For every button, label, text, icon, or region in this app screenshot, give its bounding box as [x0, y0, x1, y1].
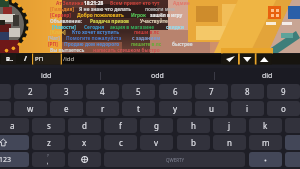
button[interactable]: Period — [249, 152, 282, 167]
button[interactable]: o — [267, 101, 300, 116]
staticText: Ат Зелинка — [56, 0, 84, 7]
staticText: y — [173, 103, 178, 114]
staticText: 5 — [136, 86, 141, 97]
staticText: Сегодня — [84, 24, 105, 31]
button[interactable]: i — [231, 101, 264, 116]
staticText: [РП] — [48, 41, 58, 48]
staticText: [Гильдия] — [50, 6, 74, 13]
staticText: b — [191, 137, 196, 148]
staticText: f — [119, 120, 122, 131]
staticText: скидки — [166, 24, 184, 31]
staticText: помоги мне — [145, 6, 175, 13]
button[interactable]: x — [68, 135, 101, 150]
button[interactable]: РП — [35, 54, 61, 64]
button[interactable]: 5 — [122, 84, 155, 99]
staticText: Объявление: — [50, 18, 82, 25]
staticText: x — [82, 137, 87, 148]
staticText: пиши в лс — [134, 29, 160, 36]
button[interactable]: Enter — [285, 152, 300, 167]
button[interactable]: did — [214, 68, 300, 84]
staticText: , — [47, 159, 49, 166]
staticText: odd — [151, 71, 164, 81]
button[interactable]: 3 — [50, 84, 83, 99]
staticText: с заданием — [132, 35, 161, 42]
button[interactable]: 7 — [195, 84, 228, 99]
button[interactable]: g — [140, 118, 173, 133]
staticText: 8 — [245, 86, 250, 97]
staticText: 4 — [100, 86, 105, 97]
staticText: / — [24, 54, 27, 64]
button[interactable]: Backspace — [285, 135, 300, 150]
button[interactable]: / — [19, 54, 32, 64]
button[interactable]: d — [68, 118, 101, 133]
staticText: QWERTY — [166, 157, 185, 163]
staticText: написать слишком быстро — [93, 47, 160, 54]
button[interactable]: a — [0, 118, 29, 133]
staticText: Участвуйте — [140, 18, 168, 25]
staticText: Я не знаю что делать — [79, 6, 132, 13]
staticText: h — [191, 120, 196, 131]
staticText: j — [228, 120, 231, 131]
staticText: m — [262, 137, 270, 148]
button[interactable]: c — [104, 135, 137, 150]
staticText: e — [64, 103, 69, 114]
button[interactable]: t — [122, 101, 155, 116]
button[interactable]: e — [50, 101, 83, 116]
button[interactable]: n — [213, 135, 246, 150]
staticText: [Чат] — [48, 35, 60, 42]
button[interactable]: f — [104, 118, 137, 133]
button[interactable]: 4 — [86, 84, 119, 99]
staticText: t — [137, 103, 140, 114]
button[interactable]: 8 — [231, 84, 264, 99]
button[interactable]: s — [32, 118, 65, 133]
staticText: РП — [35, 55, 44, 63]
button[interactable]: 6 — [159, 84, 192, 99]
staticText: Помогите пожалуйста — [66, 35, 122, 42]
button[interactable]: r — [86, 101, 119, 116]
staticText: i — [246, 103, 249, 114]
button[interactable]: k — [249, 118, 282, 133]
button[interactable]: ?123 — [0, 152, 29, 167]
button[interactable]: B.. — [3, 54, 17, 64]
staticText: z — [47, 137, 51, 148]
staticText: B.. — [6, 55, 14, 63]
button[interactable]: m — [249, 135, 282, 150]
staticText: Всем привет кто тут — [110, 0, 160, 7]
staticText: быстрее — [172, 41, 193, 48]
button[interactable]: w — [14, 101, 47, 116]
button[interactable]: Shift — [0, 135, 29, 150]
staticText: Добро пожаловать — [77, 12, 124, 19]
button[interactable]: b — [177, 135, 210, 150]
staticText: c — [119, 137, 123, 148]
staticText: w — [27, 103, 34, 114]
button[interactable]: z — [32, 135, 65, 150]
button[interactable]: h — [177, 118, 210, 133]
staticText: Продаю дом недорого — [64, 41, 120, 48]
button[interactable]: odd — [100, 68, 214, 84]
staticText: k — [263, 120, 268, 131]
staticText: Игрок — [131, 12, 147, 19]
staticText: зашёл в игру — [150, 12, 183, 19]
button[interactable]: j — [213, 118, 246, 133]
button[interactable]: 9 — [267, 84, 300, 99]
button[interactable]: Comma — [32, 152, 65, 167]
staticText: did — [262, 71, 273, 81]
staticText: u — [209, 103, 214, 114]
button[interactable]: 2 — [14, 84, 47, 99]
staticText: a — [10, 120, 15, 131]
staticText: o — [281, 103, 286, 114]
button[interactable]: u — [195, 101, 228, 116]
staticText: /idd — [63, 55, 75, 63]
button[interactable]: y — [159, 101, 192, 116]
button[interactable]: Language — [68, 152, 101, 167]
button[interactable]: idd — [0, 68, 100, 84]
staticText: Админ — [173, 0, 190, 7]
staticText: Вы пытаетесь — [50, 47, 85, 54]
staticText: пишите в лс — [131, 41, 162, 48]
button[interactable]: Space — [104, 152, 245, 167]
staticText: [Сервер] — [50, 12, 71, 19]
button[interactable]: v — [140, 135, 173, 150]
